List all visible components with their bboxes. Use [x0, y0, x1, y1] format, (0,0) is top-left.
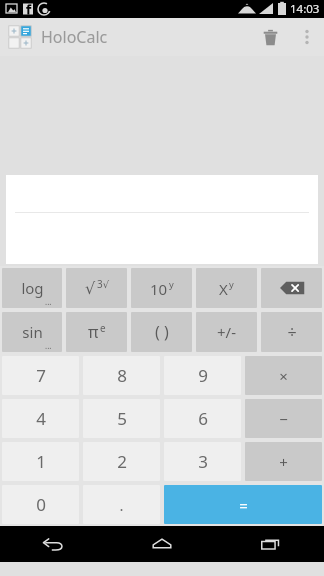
button[interactable]: − [245, 399, 322, 438]
staticText: 9 [198, 364, 208, 387]
staticText: 3√ [97, 277, 109, 291]
staticText: 10 [150, 279, 168, 299]
staticText: 3 [198, 450, 208, 473]
staticText: y [169, 278, 174, 291]
staticText: 8 [117, 364, 127, 387]
staticText: × [279, 366, 288, 386]
staticText: X [219, 279, 228, 299]
button[interactable]: 9 [164, 356, 241, 395]
button[interactable]: = [164, 485, 322, 524]
button[interactable]: 7 [2, 356, 79, 395]
button[interactable]: Home [108, 526, 216, 562]
staticText: ( ) [155, 321, 169, 343]
button[interactable]: π [66, 312, 127, 352]
staticText: ÷ [287, 321, 297, 343]
button[interactable]: X [196, 268, 257, 308]
button[interactable]: sin [2, 312, 62, 352]
staticText: 0 [36, 493, 46, 516]
button[interactable]: 5 [83, 399, 160, 438]
button[interactable]: More options [290, 20, 324, 54]
staticText: = [239, 495, 248, 515]
staticText: 1 [36, 450, 46, 473]
staticText: . [119, 495, 124, 515]
button[interactable]: ( ) [131, 312, 192, 352]
button[interactable]: 8 [83, 356, 160, 395]
button[interactable]: + [245, 442, 322, 481]
staticText: +/- [217, 322, 236, 342]
button[interactable]: ÷ [261, 312, 322, 352]
button[interactable]: . [83, 485, 160, 524]
button[interactable]: Back [0, 526, 108, 562]
staticText: 7 [36, 364, 46, 387]
button[interactable]: Delete [261, 268, 322, 308]
staticText: ... [45, 340, 52, 351]
button[interactable]: √ [66, 268, 127, 308]
button[interactable]: +/- [196, 312, 257, 352]
staticText: 5 [117, 407, 127, 430]
staticText: log [21, 278, 44, 298]
staticText: HoloCalc [41, 26, 108, 48]
button[interactable]: 6 [164, 399, 241, 438]
staticText: e [100, 321, 106, 335]
staticText: √ [85, 279, 96, 298]
button[interactable]: 3 [164, 442, 241, 481]
button[interactable]: 1 [2, 442, 79, 481]
staticText: + [279, 452, 288, 472]
staticText: − [279, 409, 288, 429]
staticText: π [88, 321, 99, 343]
staticText: sin [22, 322, 43, 342]
button[interactable]: Clear history [250, 18, 290, 56]
staticText: 6 [198, 407, 208, 430]
staticText: 2 [117, 450, 127, 473]
button[interactable]: Recent apps [216, 526, 324, 562]
button[interactable]: log [2, 268, 62, 308]
staticText: 4 [36, 407, 46, 430]
staticText: 14:03 [290, 1, 320, 17]
button[interactable]: 10 [131, 268, 192, 308]
staticText: ... [45, 296, 52, 307]
button[interactable]: 0 [2, 485, 79, 524]
staticText: y [229, 278, 234, 291]
button[interactable]: × [245, 356, 322, 395]
button[interactable]: 2 [83, 442, 160, 481]
button[interactable]: 4 [2, 399, 79, 438]
